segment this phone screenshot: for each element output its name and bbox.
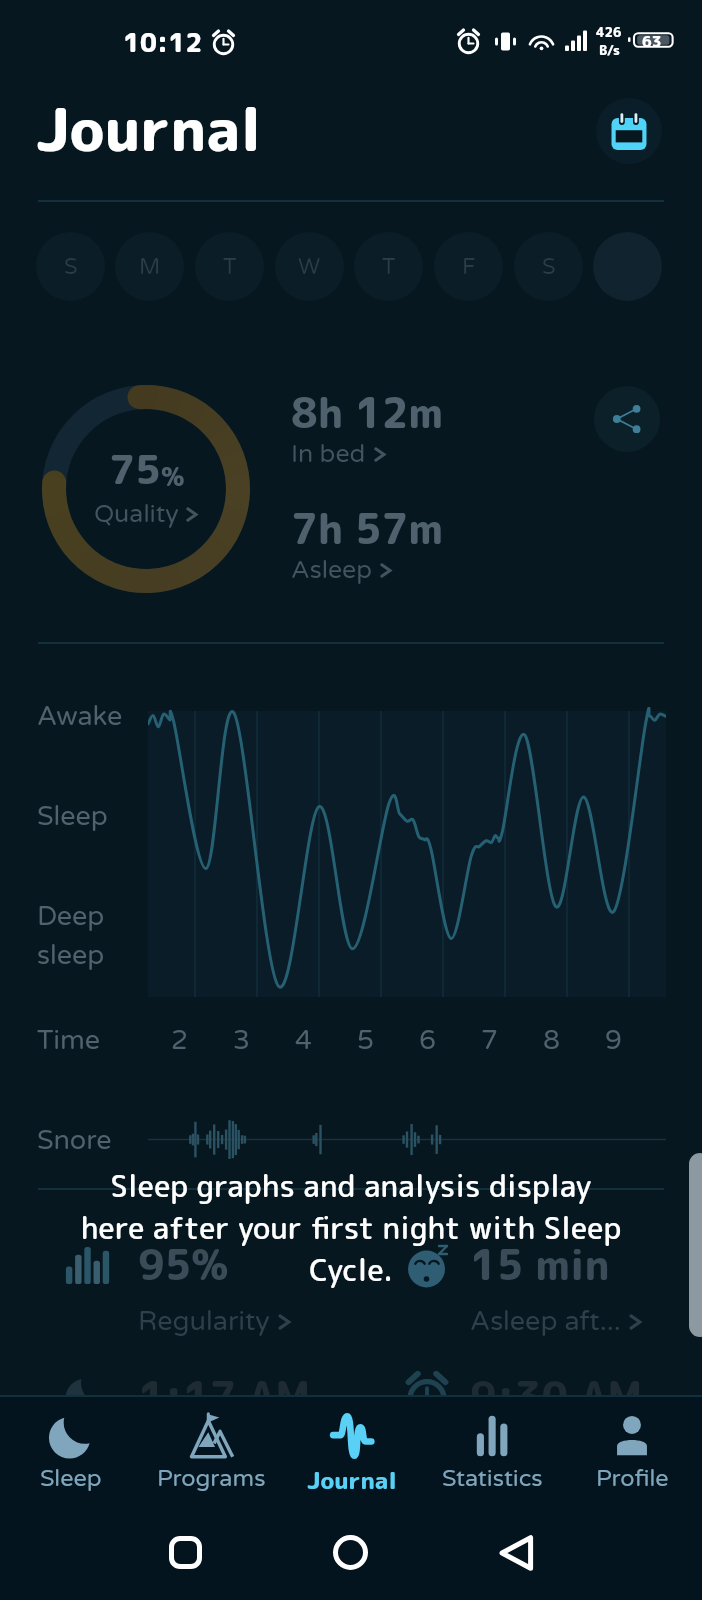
staticText: Asleep (291, 555, 372, 585)
staticText: 5 (357, 1024, 374, 1057)
staticText: 2 (171, 1024, 188, 1057)
staticText: 8h 12m (291, 384, 444, 441)
button[interactable]: Calendar (596, 98, 662, 164)
staticText: 10:12 (123, 24, 203, 60)
button[interactable]: 15 min (400, 1236, 573, 1326)
button[interactable]: Share (594, 386, 660, 452)
staticText: % (161, 458, 185, 494)
button[interactable]: Sleep (0, 1396, 141, 1492)
staticText: In bed (291, 439, 366, 469)
staticText: 8 (543, 1024, 560, 1057)
staticText: 9:30 AM (470, 1368, 643, 1425)
other: Recents (169, 1536, 202, 1569)
staticText: 6 (419, 1024, 436, 1057)
staticText: Regularity (138, 1305, 270, 1338)
staticText: 95% (138, 1236, 229, 1293)
staticText: 4 (295, 1024, 312, 1057)
staticText: 7 (481, 1024, 498, 1057)
button[interactable]: 1:17 AM (60, 1368, 233, 1425)
staticText: Asleep aft... (470, 1305, 621, 1338)
other: Home (333, 1535, 368, 1570)
staticText: 426 (596, 23, 622, 41)
staticText: Journal (36, 88, 262, 170)
staticText: 1:17 AM (138, 1368, 311, 1425)
staticText: W (298, 254, 321, 280)
staticText: 9 (605, 1024, 622, 1057)
button[interactable]: T (354, 232, 423, 301)
button[interactable]: T (195, 232, 264, 301)
staticText: S (542, 254, 556, 280)
staticText: Programs (157, 1464, 266, 1492)
button[interactable]: 8h 12m (291, 384, 444, 471)
staticText: 7h 57m (291, 500, 444, 557)
button[interactable]: 75 (42, 385, 250, 593)
staticText: T (382, 254, 396, 280)
button[interactable]: M (115, 232, 184, 301)
staticText: B/s (599, 41, 620, 59)
staticText: T (223, 254, 237, 280)
staticText: Snore (37, 1124, 112, 1157)
button[interactable]: Profile (562, 1396, 702, 1492)
staticText: Journal (307, 1464, 397, 1497)
staticText: Sleep (40, 1464, 102, 1492)
staticText: Statistics (442, 1464, 543, 1492)
button[interactable]: Statistics (422, 1396, 562, 1492)
button[interactable]: 9:30 AM (400, 1368, 573, 1425)
staticText: 63 (642, 31, 662, 52)
staticText: 3 (233, 1024, 250, 1057)
staticText: Awake (37, 700, 123, 733)
staticText: M (139, 254, 161, 280)
staticText: S (64, 254, 78, 280)
staticText: Sleep graphs and analysis display here a… (41, 1164, 661, 1290)
button[interactable]: 7h 57m (291, 500, 444, 587)
staticText: Profile (596, 1464, 669, 1492)
button[interactable]: 95% (60, 1236, 214, 1326)
staticText: F (462, 254, 476, 280)
staticText: Deep sleep (37, 900, 105, 972)
button[interactable]: W (275, 232, 344, 301)
other: Back (500, 1536, 534, 1570)
staticText: Quality (94, 499, 179, 529)
staticText: 15 min (470, 1236, 610, 1293)
button[interactable]: Programs (141, 1396, 282, 1492)
button[interactable]: F (434, 232, 503, 301)
staticText: 75 (109, 441, 161, 497)
button[interactable]: S (514, 232, 583, 301)
button[interactable]: S (36, 232, 105, 301)
staticText: Time (37, 1024, 100, 1057)
staticText: Sleep (37, 800, 108, 833)
button[interactable] (593, 232, 662, 301)
button[interactable]: Journal (282, 1396, 422, 1497)
